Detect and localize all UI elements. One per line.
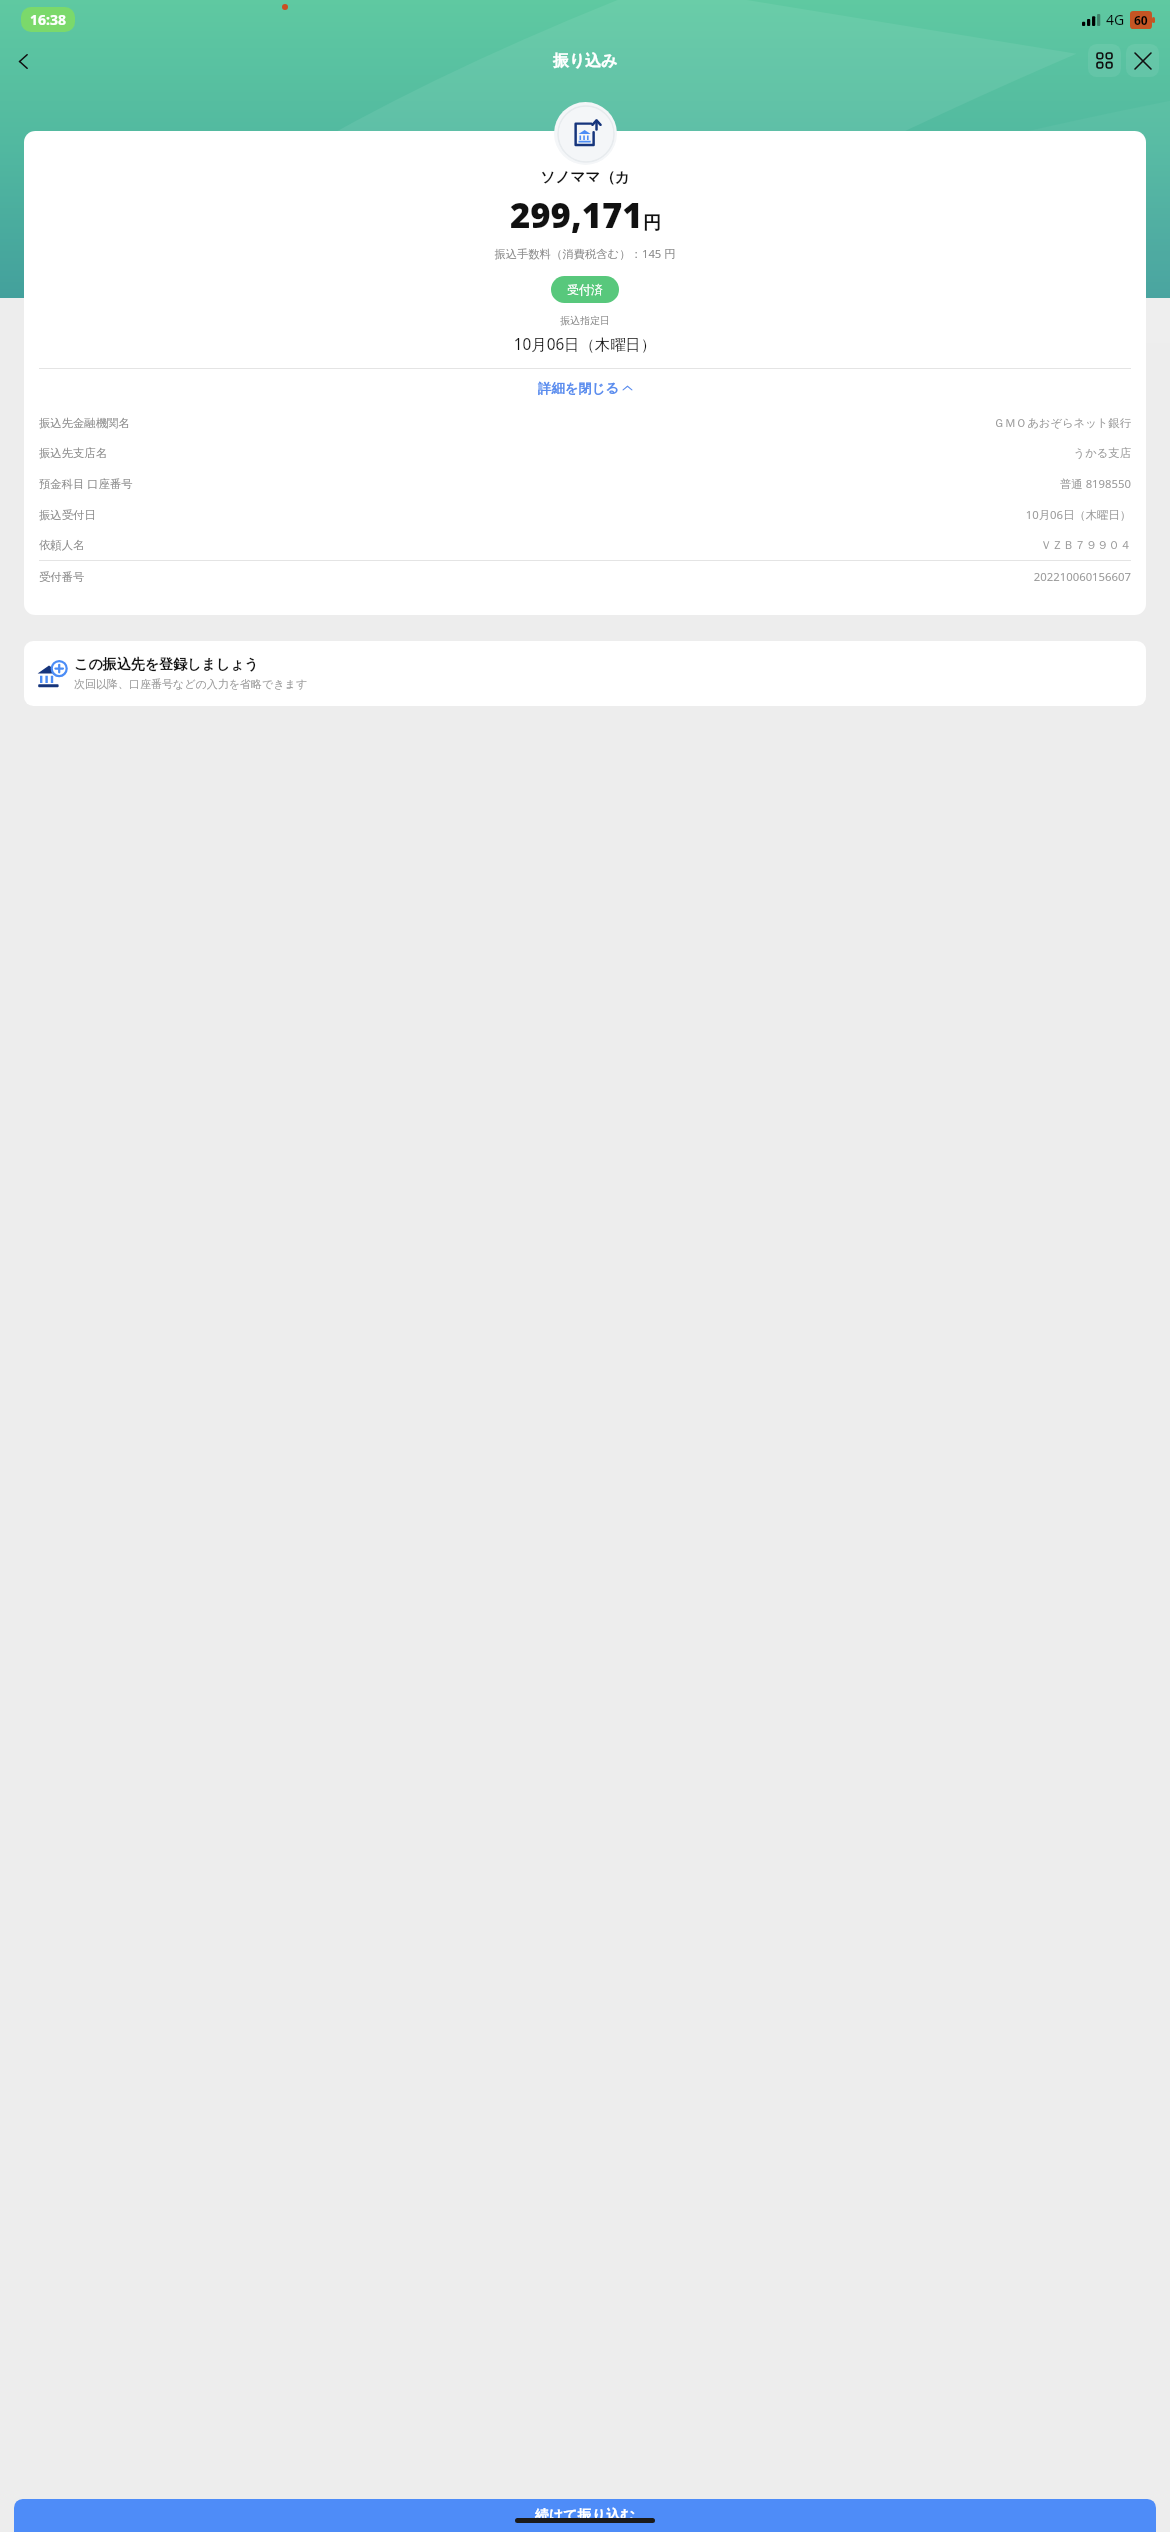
staticText: 振込指定日 [24,314,1146,327]
button[interactable]: 続けて振り込む [14,2499,1156,2532]
staticText: 依頼人名 [39,538,85,552]
staticText: 円 [643,212,661,235]
button[interactable]: 詳細を閉じる [24,369,1146,408]
staticText: 普通 8198550 [1060,476,1131,491]
staticText: 受付番号 [39,570,85,584]
staticText: ソノママ（カ [24,168,1146,186]
staticText: 202210060156607 [1033,569,1131,584]
staticText: 10月06日（木曜日） [1025,507,1131,522]
staticText: 詳細を閉じる [538,380,619,397]
staticText: 60 [1134,12,1148,28]
button[interactable]: この振込先を登録しましょう [24,641,1146,706]
staticText: 振込先支店名 [39,446,107,460]
staticText: 振り込み [0,51,1170,71]
staticText: ＧＭＯあおぞらネット銀行 [993,416,1131,430]
staticText: この振込先を登録しましょう [74,656,259,674]
staticText: 振込手数料（消費税含む）：145 円 [24,246,1146,261]
button[interactable]: Close [1126,44,1159,77]
staticText: 次回以降、口座番号などの入力を省略できます [74,677,308,691]
button[interactable]: 受付済 [551,276,619,303]
staticText: 4G [1106,10,1125,29]
staticText: 10月06日（木曜日） [24,334,1146,355]
staticText: 受付済 [567,282,603,297]
staticText: 振込先金融機関名 [39,416,130,430]
staticText: うかる支店 [1073,446,1131,460]
button[interactable]: Menu [1088,44,1121,77]
staticText: 299,171 [510,191,643,238]
staticText: ＶＺＢ７９９０４ [1040,538,1131,552]
staticText: 16:38 [30,10,66,29]
button[interactable]: Back [7,45,39,77]
staticText: 預金科目 口座番号 [39,476,133,491]
staticText: 振込受付日 [39,508,96,522]
staticText: 続けて振り込む [535,2507,635,2525]
